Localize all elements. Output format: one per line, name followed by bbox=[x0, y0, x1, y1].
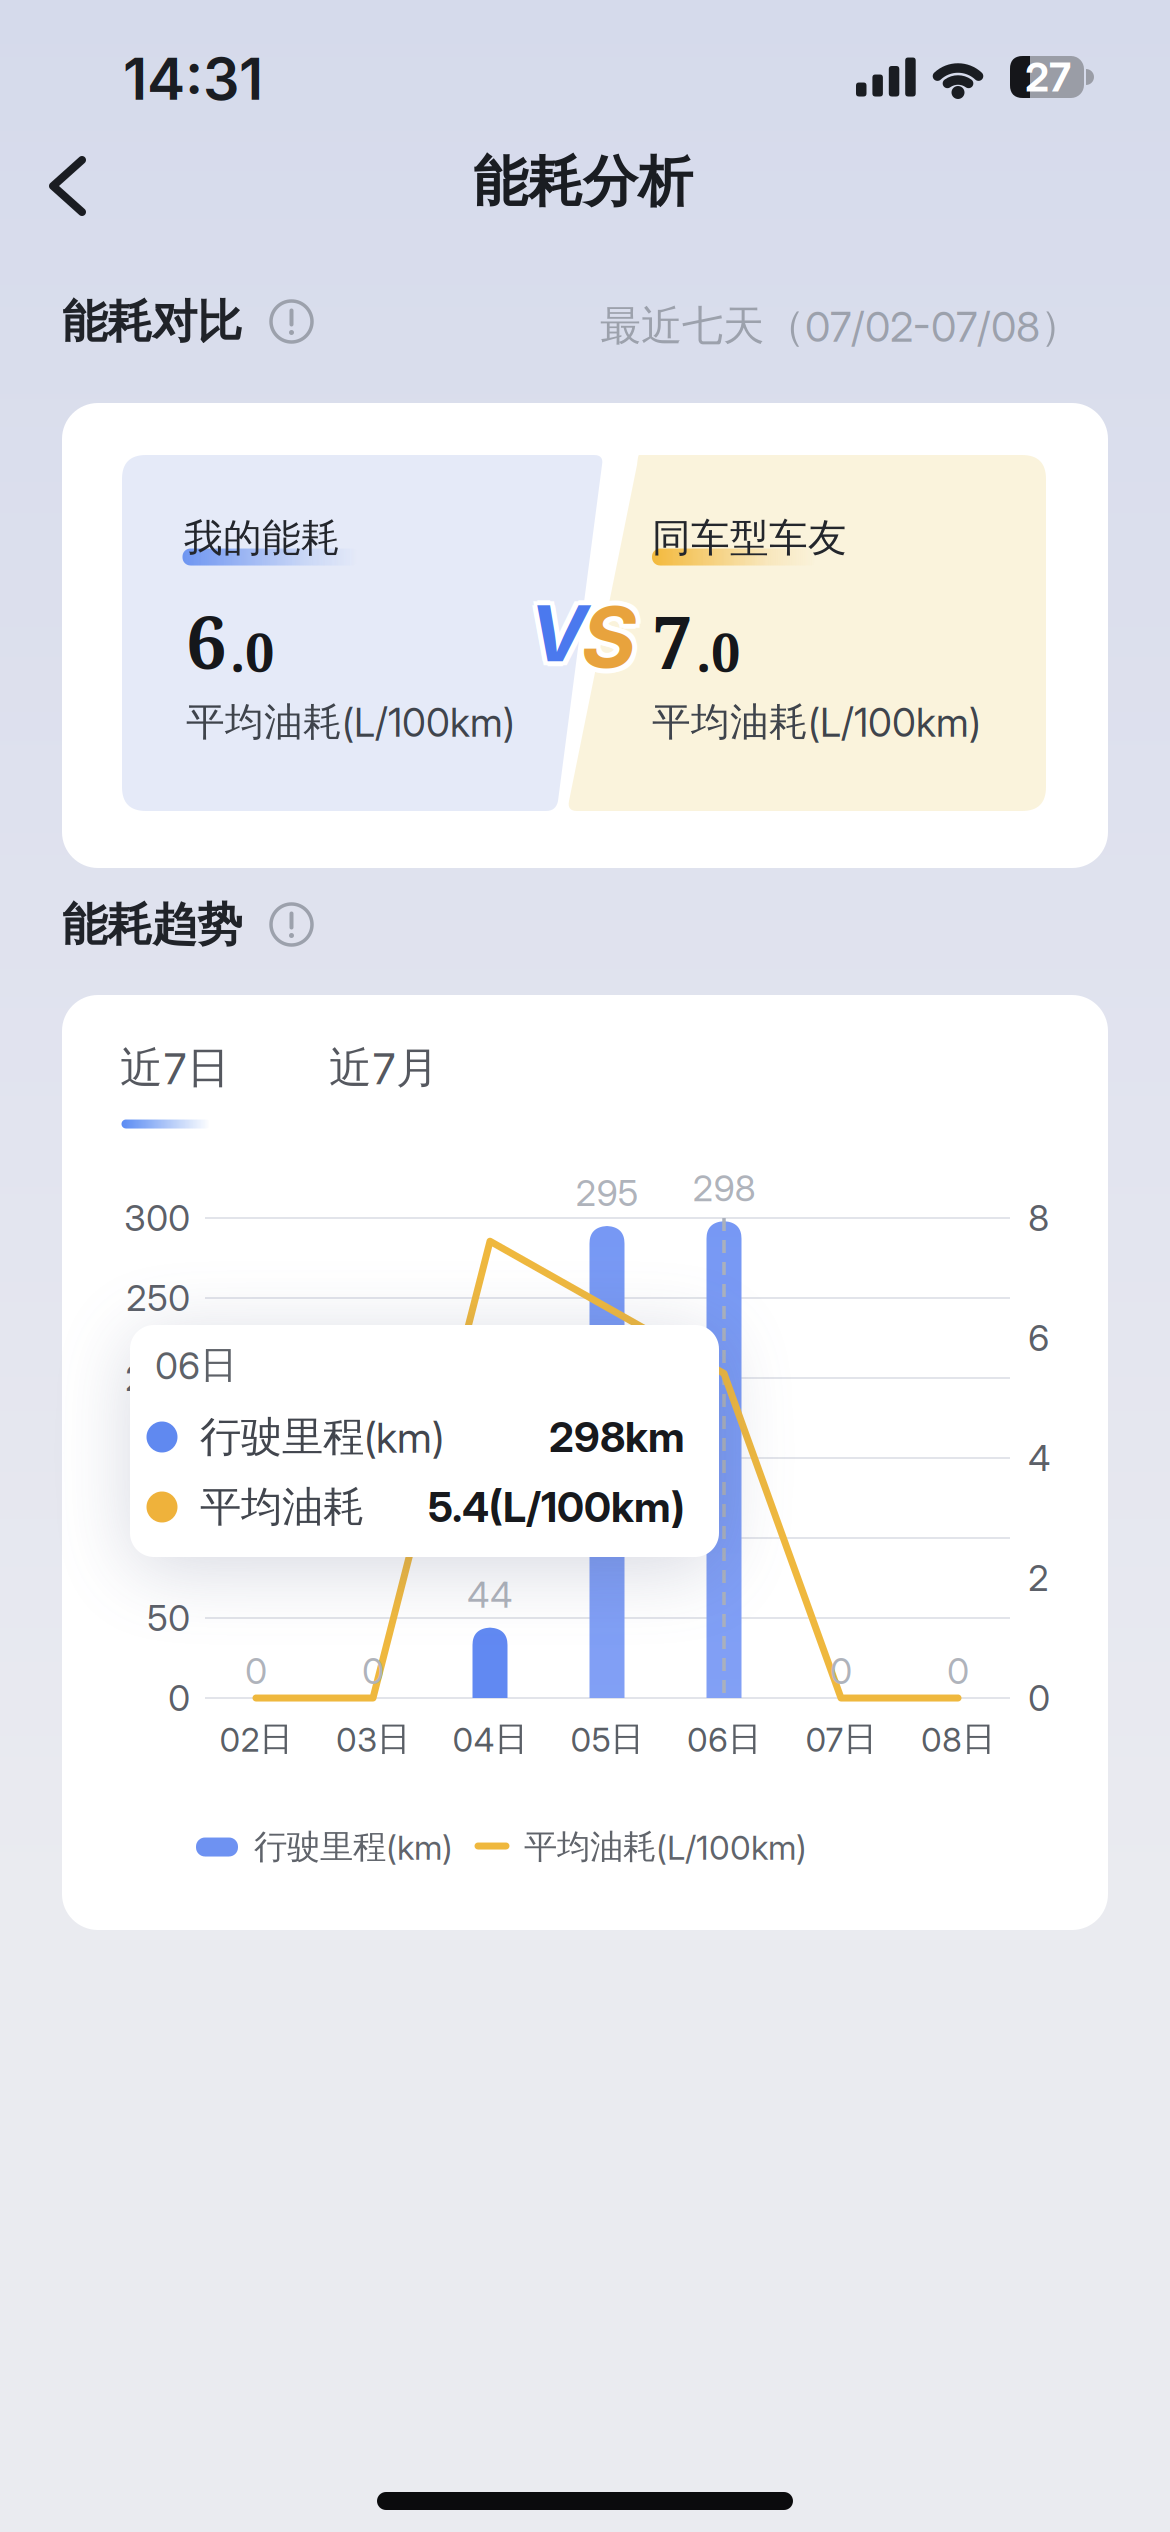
staticText: 能耗对比 bbox=[62, 294, 242, 350]
staticText: V bbox=[525, 591, 583, 683]
button[interactable]: Back bbox=[45, 152, 113, 220]
staticText: S bbox=[581, 592, 636, 692]
staticText: 0 bbox=[362, 1650, 384, 1692]
staticText: 14:31 bbox=[123, 45, 263, 113]
staticText: 近7月 bbox=[329, 1042, 439, 1094]
staticText: 02日 bbox=[219, 1718, 292, 1759]
staticText: S bbox=[581, 582, 636, 682]
staticText: 我的能耗 bbox=[184, 514, 340, 562]
staticText: 04日 bbox=[452, 1718, 527, 1759]
staticText: 200 bbox=[125, 1357, 190, 1399]
staticText: V bbox=[533, 591, 591, 683]
staticText: 5.4(L/100km) bbox=[428, 1483, 685, 1531]
button[interactable]: Info bbox=[268, 901, 314, 947]
staticText: 0 bbox=[1028, 1677, 1050, 1719]
staticText: V bbox=[524, 587, 582, 679]
staticText: 平均油耗(L/100km) bbox=[524, 1826, 807, 1867]
staticText: S bbox=[577, 591, 632, 691]
staticText: V bbox=[525, 583, 583, 675]
button[interactable]: 近7月 bbox=[329, 1042, 439, 1094]
staticText: 近7日 bbox=[120, 1042, 230, 1094]
staticText: 250 bbox=[126, 1277, 190, 1319]
staticText: V bbox=[534, 587, 592, 679]
staticText: S bbox=[585, 583, 640, 683]
staticText: 03日 bbox=[336, 1718, 410, 1759]
staticText: 295 bbox=[575, 1172, 638, 1214]
staticText: 能耗趋势 bbox=[62, 897, 242, 953]
staticText: 同车型车友 bbox=[652, 514, 847, 562]
staticText: 50 bbox=[147, 1597, 190, 1639]
staticText: 最近七天（07/02-07/08） bbox=[600, 301, 1081, 351]
staticText: 44 bbox=[467, 1573, 513, 1616]
staticText: S bbox=[585, 591, 640, 691]
staticText: 平均油耗 bbox=[200, 1482, 364, 1532]
staticText: 2 bbox=[1028, 1557, 1049, 1599]
staticText: 27 bbox=[1025, 53, 1071, 101]
staticText: .0 bbox=[230, 616, 274, 687]
button[interactable]: Info bbox=[268, 298, 314, 344]
staticText: 行驶里程(km) bbox=[254, 1826, 453, 1867]
staticText: 150 bbox=[134, 1437, 190, 1479]
staticText: S bbox=[576, 587, 631, 687]
staticText: S bbox=[581, 587, 636, 687]
staticText: 6 bbox=[1028, 1317, 1049, 1359]
staticText: 100 bbox=[133, 1517, 190, 1559]
staticText: V bbox=[529, 587, 587, 679]
staticText: 298km bbox=[549, 1413, 685, 1461]
button[interactable]: 近7日 bbox=[120, 1042, 230, 1094]
staticText: 05日 bbox=[570, 1718, 643, 1759]
staticText: 4 bbox=[1028, 1437, 1051, 1479]
staticText: 07日 bbox=[805, 1718, 876, 1759]
staticText: 能耗分析 bbox=[473, 148, 693, 215]
staticText: 0 bbox=[168, 1677, 190, 1719]
staticText: V bbox=[533, 583, 591, 675]
staticText: 298 bbox=[692, 1167, 755, 1209]
staticText: .0 bbox=[696, 616, 740, 687]
staticText: S bbox=[586, 587, 641, 687]
staticText: 行驶里程(km) bbox=[200, 1412, 444, 1462]
staticText: 0 bbox=[245, 1650, 267, 1692]
staticText: 300 bbox=[124, 1197, 190, 1239]
staticText: 平均油耗(L/100km) bbox=[652, 698, 981, 746]
staticText: 0 bbox=[947, 1650, 969, 1692]
staticText: 平均油耗(L/100km) bbox=[186, 698, 515, 746]
staticText: 08日 bbox=[921, 1718, 995, 1759]
staticText: 8 bbox=[1028, 1197, 1049, 1239]
staticText: S bbox=[577, 583, 632, 683]
staticText: V bbox=[529, 592, 587, 684]
staticText: 0 bbox=[830, 1650, 852, 1692]
staticText: 6 bbox=[186, 592, 227, 690]
staticText: 7 bbox=[652, 592, 693, 690]
staticText: 06日 bbox=[155, 1342, 237, 1388]
staticText: V bbox=[529, 582, 587, 674]
staticText: 06日 bbox=[687, 1718, 761, 1759]
